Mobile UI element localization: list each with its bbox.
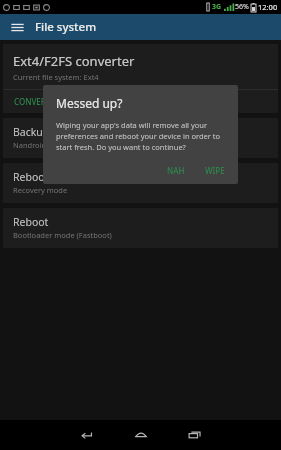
staticText: NAH: [167, 165, 185, 176]
staticText: Nandroid: [13, 140, 47, 150]
staticText: Ext4/F2FS converter: [13, 52, 135, 70]
staticText: Wiping your app's data will remove all y…: [56, 120, 225, 152]
staticText: 56%: [235, 2, 249, 12]
button[interactable]: INFO: [62, 93, 92, 110]
staticText: Current file system: Ext4: [13, 72, 99, 82]
button[interactable]: CONVERT: [9, 93, 56, 110]
staticText: 12:00: [258, 2, 278, 12]
button[interactable]: Reboot: [3, 163, 278, 203]
button[interactable]: WIPE: [200, 162, 230, 179]
staticText: Reboot: [13, 170, 49, 184]
staticText: Messed up?: [56, 95, 123, 111]
button[interactable]: NAH: [162, 162, 190, 179]
staticText: INFO: [67, 96, 87, 107]
button[interactable]: Home: [121, 420, 161, 450]
button[interactable]: Back: [67, 420, 107, 450]
staticText: Recovery mode: [13, 185, 68, 195]
staticText: Reboot: [13, 215, 49, 229]
button[interactable]: Recent apps: [175, 420, 215, 450]
staticText: 3G: [212, 2, 222, 12]
staticText: WIPE: [205, 165, 225, 176]
button[interactable]: Backup: [3, 118, 278, 158]
staticText: CONVERT: [14, 96, 51, 107]
button[interactable]: Reboot: [3, 208, 278, 248]
staticText: File system: [35, 19, 97, 35]
button[interactable]: Open navigation drawer: [8, 18, 26, 36]
staticText: Backup: [13, 125, 50, 139]
staticText: Bootloader mode (Fastboot): [13, 230, 112, 240]
